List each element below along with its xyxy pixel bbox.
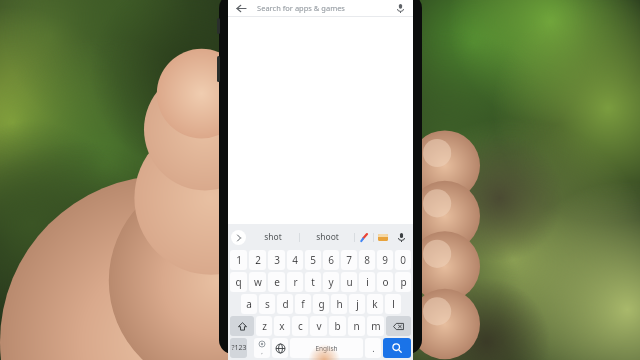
staticText: b: [334, 319, 341, 333]
button[interactable]: Settings: [254, 338, 270, 358]
staticText: q: [235, 275, 242, 289]
staticText: w: [254, 275, 262, 289]
staticText: a: [246, 297, 252, 311]
button[interactable]: e: [268, 272, 285, 292]
staticText: t: [311, 275, 315, 289]
button[interactable]: i: [359, 272, 375, 292]
button[interactable]: w: [249, 272, 266, 292]
button[interactable]: shoot: [300, 224, 354, 250]
button[interactable]: l: [385, 294, 401, 314]
button[interactable]: 8: [359, 250, 375, 270]
staticText: 3: [274, 253, 280, 267]
staticText: Search for apps & games: [257, 3, 345, 13]
staticText: j: [356, 297, 359, 311]
button[interactable]: j: [349, 294, 365, 314]
staticText: n: [353, 319, 360, 333]
staticText: u: [346, 275, 353, 289]
button[interactable]: x: [274, 316, 290, 336]
button[interactable]: 1: [230, 250, 247, 270]
button[interactable]: 9: [377, 250, 393, 270]
button[interactable]: Voice search: [393, 1, 407, 15]
button[interactable]: y: [323, 272, 339, 292]
staticText: 4: [292, 253, 298, 267]
button[interactable]: q: [230, 272, 247, 292]
button[interactable]: Backspace: [386, 316, 411, 336]
staticText: 7: [346, 253, 352, 267]
button[interactable]: 4: [287, 250, 303, 270]
staticText: s: [265, 297, 270, 311]
button[interactable]: GIF: [374, 224, 392, 250]
button[interactable]: Shift: [230, 316, 254, 336]
button[interactable]: 3: [268, 250, 285, 270]
button[interactable]: z: [256, 316, 272, 336]
button[interactable]: n: [348, 316, 365, 336]
staticText: 8: [364, 253, 370, 267]
staticText: v: [316, 319, 322, 333]
button[interactable]: Stickers: [355, 224, 373, 250]
button[interactable]: 6: [323, 250, 339, 270]
staticText: i: [366, 275, 369, 289]
button[interactable]: c: [292, 316, 308, 336]
staticText: y: [328, 275, 334, 289]
staticText: h: [336, 297, 343, 311]
button[interactable]: h: [331, 294, 347, 314]
button[interactable]: s: [259, 294, 275, 314]
staticText: .: [372, 342, 375, 354]
staticText: f: [301, 297, 305, 311]
staticText: x: [279, 319, 285, 333]
staticText: p: [400, 275, 407, 289]
button[interactable]: f: [295, 294, 311, 314]
staticText: l: [392, 297, 395, 311]
button[interactable]: 7: [341, 250, 357, 270]
button[interactable]: Change language: [272, 338, 288, 358]
staticText: 9: [382, 253, 388, 267]
button[interactable]: d: [277, 294, 293, 314]
button[interactable]: o: [377, 272, 393, 292]
button[interactable]: Search for apps & games: [257, 3, 393, 13]
staticText: 1: [236, 253, 242, 267]
button[interactable]: k: [367, 294, 383, 314]
button[interactable]: u: [341, 272, 357, 292]
button[interactable]: 2: [249, 250, 266, 270]
button[interactable]: Voice input: [392, 224, 410, 250]
staticText: 2: [255, 253, 261, 267]
button[interactable]: b: [329, 316, 346, 336]
button[interactable]: Expand toolbar: [231, 230, 246, 245]
staticText: c: [298, 319, 303, 333]
button[interactable]: g: [313, 294, 329, 314]
button[interactable]: t: [305, 272, 321, 292]
button[interactable]: r: [287, 272, 303, 292]
staticText: shoot: [316, 231, 339, 243]
staticText: 0: [400, 253, 406, 267]
button[interactable]: .: [365, 338, 381, 358]
staticText: ?123: [231, 343, 247, 353]
staticText: z: [262, 319, 267, 333]
staticText: ,: [261, 348, 263, 356]
staticText: g: [318, 297, 325, 311]
button[interactable]: Search: [383, 338, 411, 358]
button[interactable]: p: [395, 272, 411, 292]
staticText: r: [293, 275, 298, 289]
button[interactable]: shot: [246, 224, 299, 250]
staticText: 6: [328, 253, 334, 267]
button[interactable]: English: [290, 338, 363, 358]
button[interactable]: 5: [305, 250, 321, 270]
button[interactable]: ?123: [230, 338, 247, 358]
staticText: d: [282, 297, 289, 311]
staticText: o: [382, 275, 389, 289]
button[interactable]: 0: [395, 250, 411, 270]
button[interactable]: v: [310, 316, 327, 336]
staticText: English: [315, 344, 338, 353]
staticText: e: [274, 275, 280, 289]
button[interactable]: Back: [234, 1, 248, 15]
button[interactable]: a: [241, 294, 257, 314]
button[interactable]: m: [367, 316, 384, 336]
staticText: shot: [264, 231, 282, 243]
staticText: k: [372, 297, 378, 311]
staticText: 5: [310, 253, 316, 267]
staticText: m: [371, 319, 381, 333]
